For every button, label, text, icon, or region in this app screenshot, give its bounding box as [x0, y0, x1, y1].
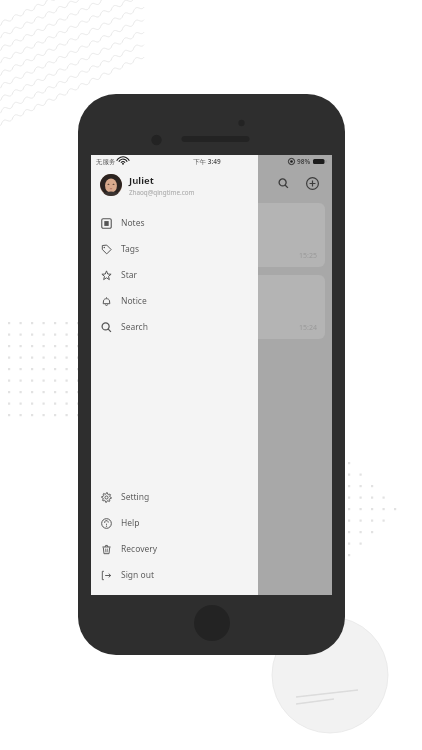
staticText: Tags — [121, 243, 140, 255]
staticText: Notice — [121, 295, 147, 307]
button[interactable]: Tags — [91, 236, 258, 262]
button[interactable]: 指导 — [98, 275, 325, 339]
button[interactable]: 15:25 — [98, 203, 325, 267]
button[interactable]: Home — [194, 605, 230, 641]
button[interactable]: Notes — [91, 210, 258, 236]
staticText: 下午 3:49 — [193, 157, 221, 166]
button[interactable]: Juliet — [91, 168, 258, 202]
button[interactable]: Add note — [302, 173, 322, 193]
staticText: 15:24 — [299, 323, 317, 333]
staticText: Zhaoq@qingtime.com — [129, 188, 195, 197]
staticText: Star — [121, 269, 138, 281]
staticText: Sign out — [121, 569, 155, 581]
button[interactable]: Star — [91, 262, 258, 288]
staticText: 15:25 — [299, 251, 317, 261]
button[interactable]: Recovery — [91, 536, 258, 562]
button[interactable]: Sign out — [91, 562, 258, 588]
staticText: 指导 — [106, 302, 124, 313]
staticText: Notes — [121, 217, 145, 229]
staticText: Recovery — [121, 543, 158, 555]
button[interactable]: Setting — [91, 484, 258, 510]
staticText: 无服务 — [96, 158, 116, 166]
staticText: Juliet — [129, 174, 154, 187]
staticText: Search — [121, 321, 148, 333]
button[interactable]: Notice — [91, 288, 258, 314]
staticText: Setting — [121, 491, 150, 503]
staticText: 98% — [297, 157, 311, 166]
button[interactable]: Help — [91, 510, 258, 536]
button[interactable]: Search — [91, 314, 258, 340]
button[interactable]: Search — [273, 173, 293, 193]
staticText: Help — [121, 517, 140, 529]
